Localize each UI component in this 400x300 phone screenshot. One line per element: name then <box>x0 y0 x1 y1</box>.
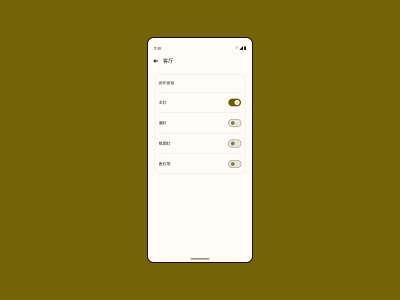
staticText: 操作面板 <box>158 80 174 85</box>
staticText: 氛围灯 <box>159 141 171 146</box>
button[interactable]: 侧灯 <box>155 113 245 133</box>
button[interactable]: 氛围灯 <box>155 133 245 153</box>
button[interactable]: 返回 <box>153 58 158 63</box>
staticText: 夜灯带 <box>159 161 171 166</box>
staticText: 9:30 <box>154 45 161 51</box>
button[interactable]: 夜灯带 <box>155 154 245 174</box>
staticText: 主灯 <box>159 100 167 105</box>
staticText: 侧灯 <box>159 120 167 125</box>
button[interactable]: 主灯 <box>155 92 245 112</box>
staticText: 客厅 <box>163 58 173 64</box>
